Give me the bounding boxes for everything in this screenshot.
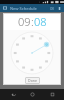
button[interactable]: Recent apps [45,89,59,100]
button[interactable]: 09 [18,14,31,29]
button[interactable]: Clock dial [11,32,53,74]
staticText: : [31,14,34,29]
button[interactable]: Done [25,77,40,84]
button[interactable]: Save [49,5,56,12]
staticText: Done [28,78,37,83]
staticText: New Schedule [10,6,49,11]
staticText: OK [50,7,55,11]
button[interactable]: More options [56,5,63,12]
button[interactable]: 08 [34,14,47,29]
button[interactable]: Home [25,89,39,100]
button[interactable]: Navigate up [2,5,8,11]
button[interactable]: Back [6,89,20,100]
